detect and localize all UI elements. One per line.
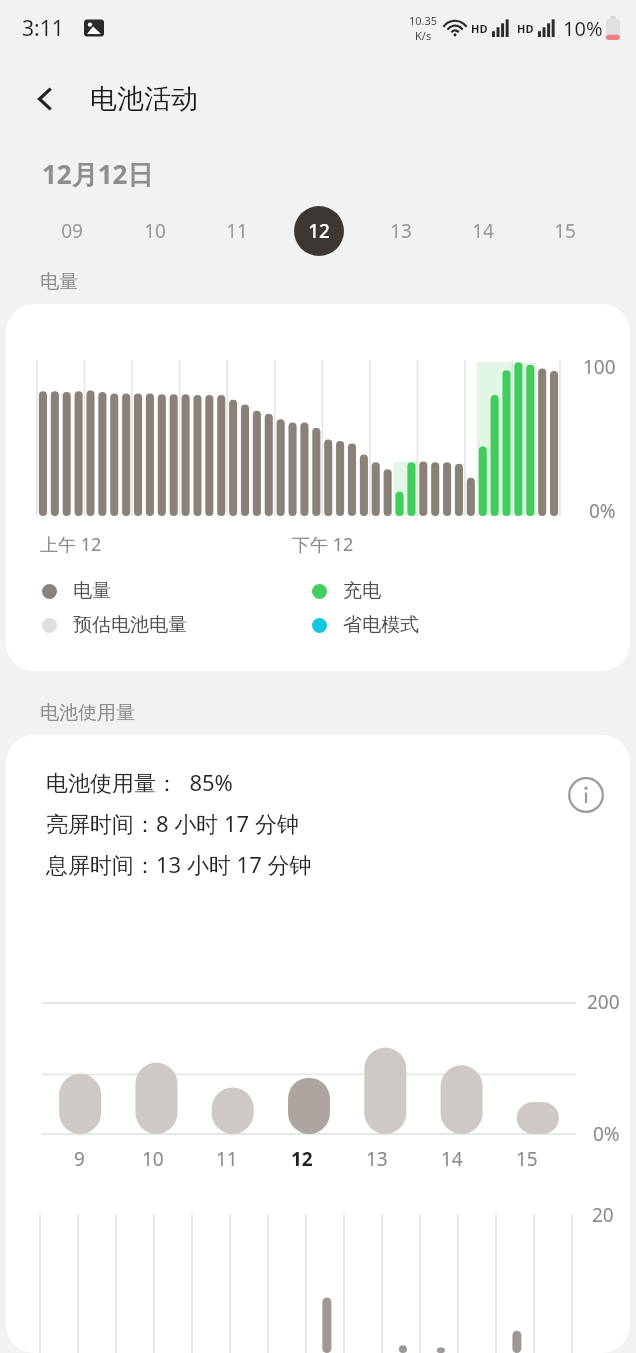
staticText: 10 xyxy=(144,218,166,244)
button[interactable]: 12 xyxy=(278,198,360,264)
staticText: 充电 xyxy=(343,579,381,603)
staticText: 15 xyxy=(554,218,576,244)
staticText: 电量 xyxy=(73,579,111,603)
staticText: 15 xyxy=(516,1146,538,1172)
staticText: 10% xyxy=(563,15,603,42)
staticText: 息屏时间：13 小时 17 分钟 xyxy=(46,849,312,879)
staticText: HD xyxy=(517,21,534,36)
staticText: 电量 xyxy=(40,270,78,294)
staticText: 14 xyxy=(472,218,494,244)
staticText: 电池活动 xyxy=(90,82,198,116)
staticText: 电池使用量： 85% xyxy=(46,767,233,797)
staticText: 14 xyxy=(441,1146,463,1172)
button[interactable]: 09 xyxy=(30,198,113,264)
staticText: 3:11 xyxy=(22,14,64,43)
staticText: K/s xyxy=(415,28,432,43)
button[interactable]: 15 xyxy=(524,198,606,264)
staticText: 11 xyxy=(216,1146,238,1172)
staticText: 100 xyxy=(583,354,616,380)
staticText: 11 xyxy=(226,218,248,244)
staticText: 13 xyxy=(366,1146,388,1172)
staticText: HD xyxy=(471,21,488,36)
staticText: 9 xyxy=(74,1146,85,1172)
staticText: 预估电池电量 xyxy=(73,613,187,637)
staticText: 0% xyxy=(589,498,616,524)
button[interactable]: 100 xyxy=(6,304,630,671)
staticText: 亮屏时间：8 小时 17 分钟 xyxy=(46,808,299,838)
staticText: 10 xyxy=(142,1146,164,1172)
staticText: 12 xyxy=(308,218,330,244)
staticText: 0% xyxy=(593,1121,620,1147)
staticText: 09 xyxy=(61,218,83,244)
staticText: 上午 12 xyxy=(40,532,102,557)
button[interactable]: 10 xyxy=(113,198,196,264)
button[interactable]: Info xyxy=(562,771,610,819)
staticText: 13 xyxy=(390,218,412,244)
staticText: 20 xyxy=(592,1202,614,1228)
staticText: 12 xyxy=(291,1146,313,1172)
button[interactable]: 11 xyxy=(196,198,278,264)
button[interactable]: Back xyxy=(18,71,74,127)
button[interactable]: 13 xyxy=(360,198,442,264)
staticText: 电池使用量 xyxy=(40,701,135,725)
staticText: 省电模式 xyxy=(343,613,419,637)
button[interactable]: 14 xyxy=(442,198,524,264)
staticText: 10.35 xyxy=(409,13,438,28)
staticText: 下午 12 xyxy=(292,532,354,557)
staticText: 12月12日 xyxy=(42,156,154,192)
staticText: 200 xyxy=(587,989,620,1015)
